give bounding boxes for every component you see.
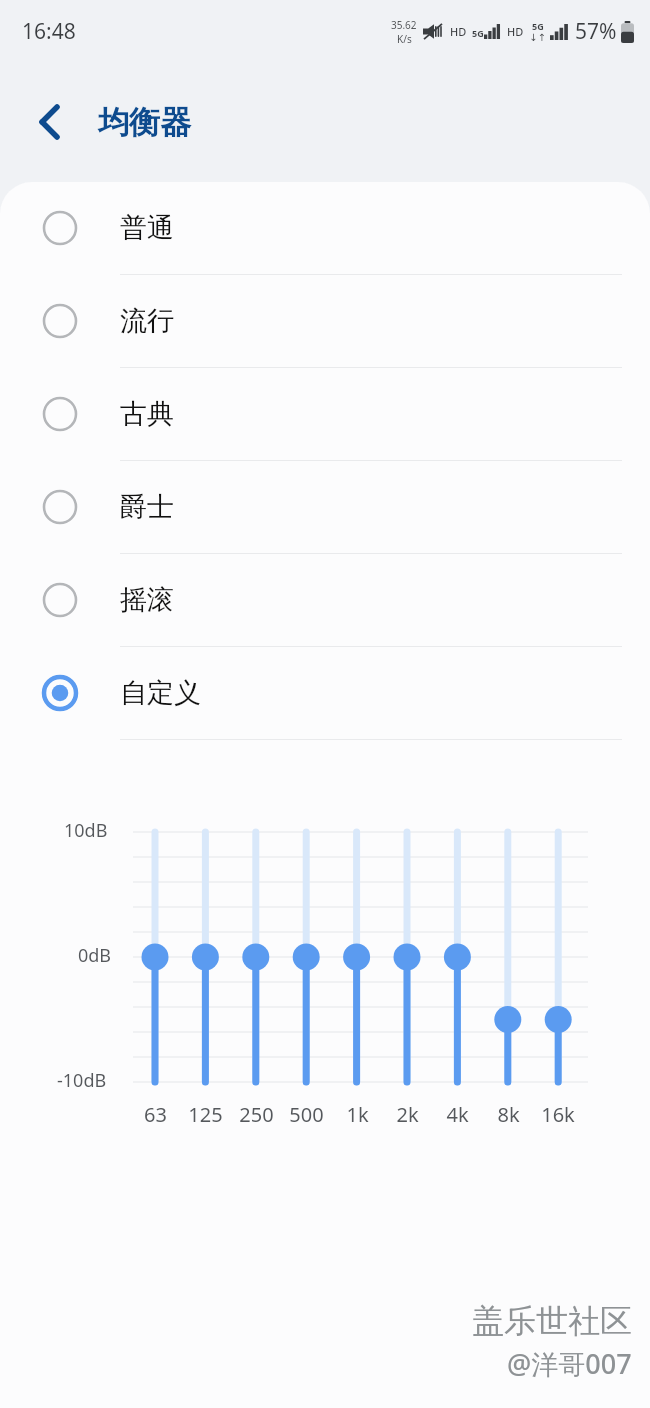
- button[interactable]: 爵士: [0, 461, 650, 553]
- staticText: 125: [188, 1101, 223, 1128]
- staticText: K/s: [397, 32, 412, 46]
- staticText: 爵士: [120, 490, 174, 524]
- staticText: 500: [289, 1101, 324, 1128]
- staticText: 0dB: [78, 943, 112, 968]
- staticText: 8k: [497, 1101, 520, 1128]
- staticText: 古典: [120, 397, 174, 431]
- staticText: 16:48: [22, 17, 76, 46]
- staticText: HD: [507, 24, 524, 39]
- button[interactable]: 古典: [0, 368, 650, 460]
- staticText: 5G: [472, 27, 484, 39]
- staticText: 流行: [120, 304, 174, 338]
- staticText: 63: [144, 1101, 167, 1128]
- staticText: 2k: [396, 1101, 419, 1128]
- staticText: 57%: [575, 17, 617, 46]
- button[interactable]: 自定义: [0, 647, 650, 739]
- button[interactable]: 摇滚: [0, 554, 650, 646]
- staticText: ↓↑: [529, 32, 546, 44]
- button[interactable]: 普通: [0, 182, 650, 274]
- button[interactable]: Back: [24, 96, 76, 148]
- staticText: 摇滚: [120, 583, 174, 617]
- staticText: HD: [450, 24, 467, 39]
- staticText: 5G: [532, 20, 544, 32]
- staticText: 盖乐世社区: [472, 1301, 632, 1341]
- staticText: 35.62: [391, 18, 417, 32]
- staticText: 普通: [120, 211, 174, 245]
- button[interactable]: 流行: [0, 275, 650, 367]
- staticText: 均衡器: [98, 103, 191, 142]
- staticText: -10dB: [57, 1068, 107, 1093]
- staticText: @洋哥007: [507, 1345, 632, 1382]
- staticText: 自定义: [120, 676, 201, 710]
- staticText: 16k: [541, 1101, 575, 1128]
- staticText: 10dB: [64, 818, 108, 843]
- staticText: 4k: [446, 1101, 469, 1128]
- staticText: 250: [239, 1101, 274, 1128]
- staticText: 1k: [346, 1101, 369, 1128]
